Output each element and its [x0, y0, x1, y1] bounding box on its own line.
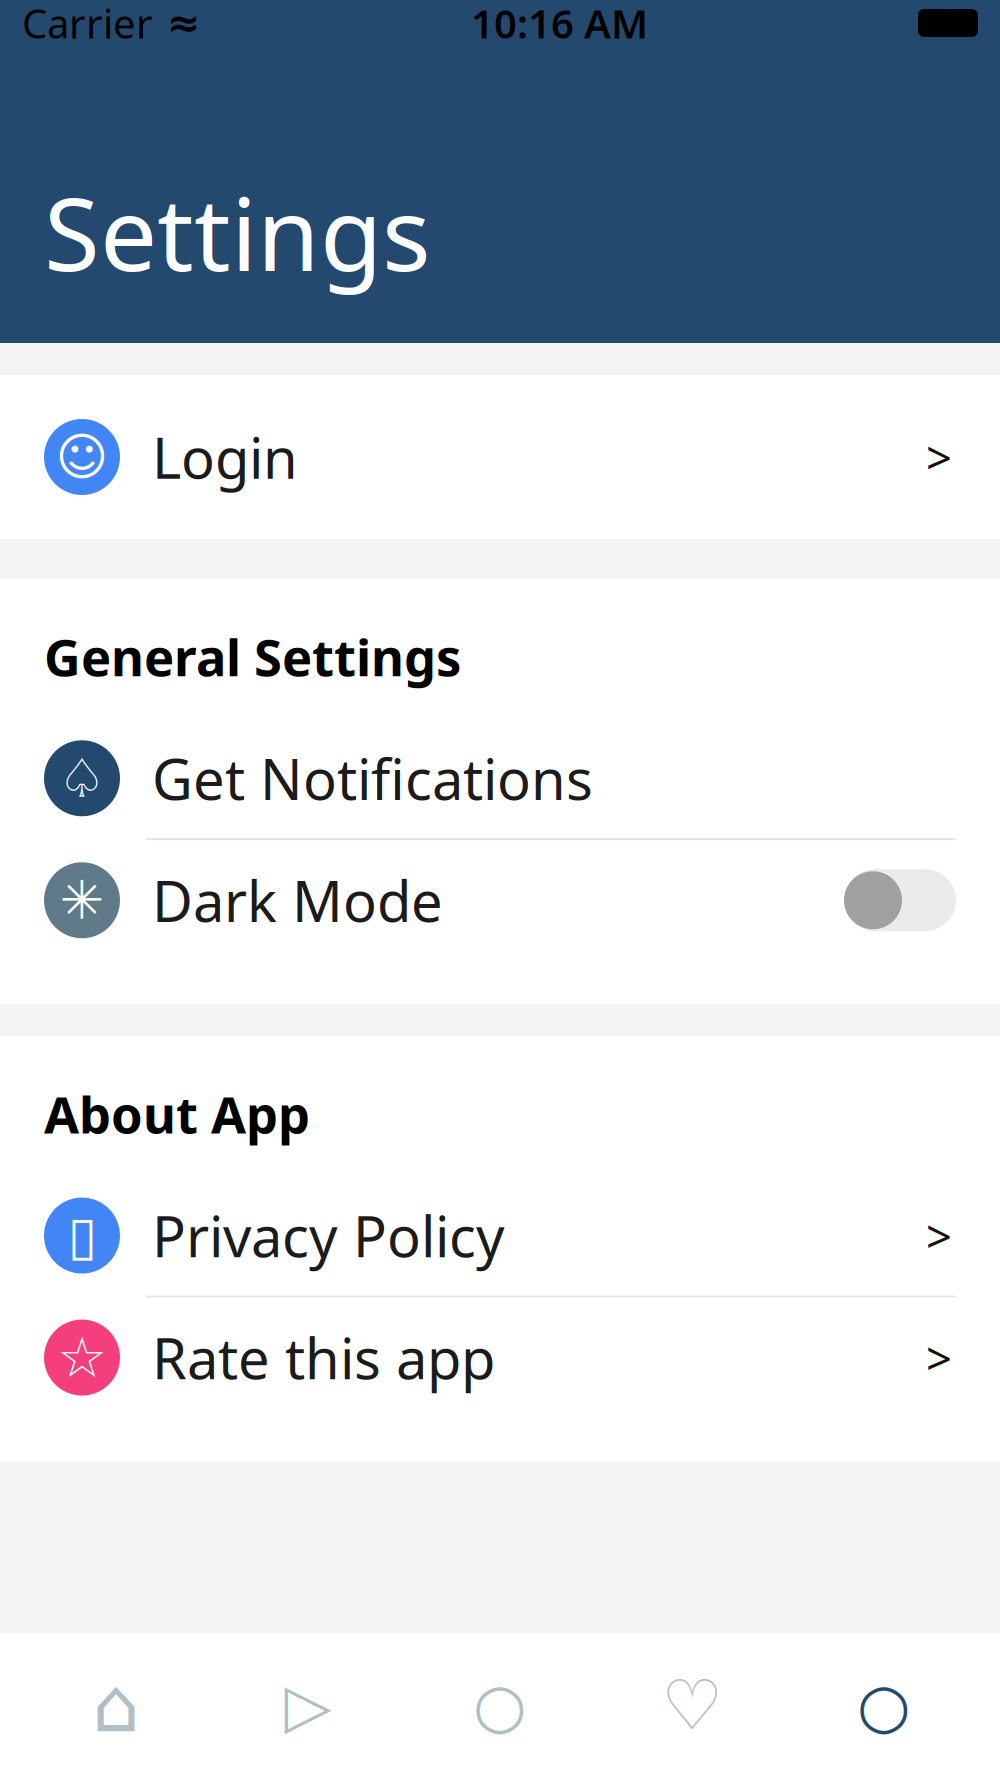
- staticText: >: [926, 427, 952, 487]
- button[interactable]: Search: [404, 1650, 596, 1760]
- button[interactable]: Home: [20, 1650, 212, 1760]
- staticText: ☺: [55, 428, 108, 486]
- staticText: ⌂: [92, 1663, 139, 1748]
- staticText: ≈: [153, 0, 201, 46]
- staticText: About App: [44, 1080, 310, 1148]
- button[interactable]: ☺: [0, 397, 1000, 517]
- staticText: ☆: [57, 1326, 107, 1389]
- staticText: ▯: [67, 1205, 96, 1266]
- button[interactable]: Profile: [788, 1650, 980, 1760]
- staticText: Login: [152, 420, 298, 494]
- staticText: General Settings: [44, 623, 461, 690]
- button[interactable]: ✳: [0, 840, 1000, 960]
- staticText: Rate this app: [152, 1320, 495, 1395]
- button[interactable]: ♤: [0, 718, 1000, 838]
- staticText: ♤: [58, 748, 106, 808]
- button[interactable]: ☆: [0, 1298, 1000, 1418]
- button[interactable]: ▯: [0, 1176, 1000, 1296]
- staticText: ✳: [59, 870, 104, 930]
- staticText: Carrier: [22, 0, 153, 49]
- staticText: ○: [473, 1671, 527, 1740]
- staticText: ○: [857, 1671, 911, 1740]
- staticText: Privacy Policy: [152, 1198, 505, 1273]
- staticText: ♡: [661, 1666, 723, 1745]
- staticText: Get Notifications: [152, 741, 593, 815]
- staticText: ▷: [284, 1671, 331, 1740]
- staticText: 10:16 AM: [471, 0, 648, 49]
- staticText: Dark Mode: [152, 863, 443, 937]
- staticText: Settings: [44, 164, 431, 299]
- button[interactable]: Favorites: [596, 1650, 788, 1760]
- button[interactable]: Videos: [212, 1650, 404, 1760]
- staticText: >: [926, 1327, 952, 1388]
- staticText: >: [926, 1205, 952, 1266]
